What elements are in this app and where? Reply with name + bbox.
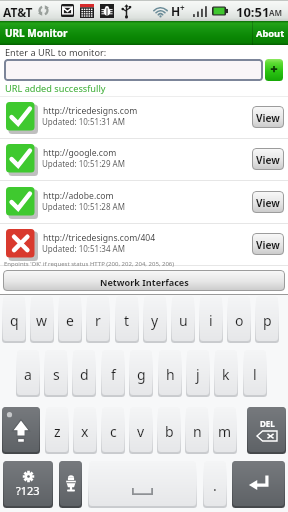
staticText: View <box>256 238 280 252</box>
button[interactable]: r <box>87 296 109 341</box>
staticText: View <box>256 111 280 125</box>
button[interactable]: View <box>252 106 284 128</box>
staticText: 10:51 <box>236 3 270 21</box>
staticText: View <box>256 153 280 167</box>
button[interactable]: Enter <box>233 461 284 506</box>
button[interactable]: y <box>144 296 166 341</box>
button[interactable]: p <box>256 296 278 341</box>
staticText: Enpoints 'OK' if request status HTTP (20… <box>4 260 175 268</box>
button[interactable]: Add URL <box>265 59 283 81</box>
button[interactable] <box>0 138 288 181</box>
staticText: m <box>218 422 232 441</box>
staticText: H <box>171 3 181 19</box>
staticText: http://tricedesigns.com/404 <box>43 232 156 244</box>
staticText: x <box>81 422 89 441</box>
button[interactable]: l <box>244 350 266 395</box>
staticText: http://tricedesigns.com <box>43 105 138 117</box>
button[interactable]: f <box>102 350 124 395</box>
button[interactable]: m <box>214 407 236 452</box>
staticText: g <box>137 365 146 384</box>
staticText: u <box>179 311 188 330</box>
button[interactable]: w <box>31 296 53 341</box>
button[interactable]: Shift <box>3 407 39 452</box>
button[interactable]: n <box>186 407 208 452</box>
button[interactable]: Delete <box>248 407 285 452</box>
staticText: q <box>10 311 19 330</box>
staticText: . <box>213 476 217 495</box>
staticText: Enter a URL to monitor: <box>5 46 107 59</box>
staticText: ?123 <box>16 483 40 498</box>
button[interactable]: Network Interfaces <box>3 270 285 291</box>
staticText: i <box>209 311 213 330</box>
button[interactable] <box>0 223 288 266</box>
button[interactable]: View <box>252 148 284 170</box>
staticText: h <box>166 365 175 384</box>
button[interactable]: s <box>45 350 67 395</box>
staticText: AM <box>269 7 283 18</box>
button[interactable]: View <box>252 191 284 213</box>
staticText: View <box>256 196 280 210</box>
staticText: y <box>151 311 159 330</box>
staticText: Network Interfaces <box>100 276 189 288</box>
staticText: URL Monitor <box>5 26 68 40</box>
button[interactable]: View <box>252 233 284 255</box>
button[interactable]: a <box>17 350 39 395</box>
staticText: Updated: 10:51:34 AM <box>42 243 125 254</box>
staticText: j <box>196 365 200 384</box>
button[interactable]: b <box>158 407 180 452</box>
staticText: URL added successfully <box>5 82 106 95</box>
button[interactable]: c <box>102 407 124 452</box>
staticText: Updated: 10:51:28 AM <box>42 201 125 212</box>
staticText: o <box>235 311 244 330</box>
staticText: p <box>263 311 272 330</box>
staticText: + <box>180 2 185 13</box>
staticText: c <box>110 422 117 441</box>
button[interactable] <box>0 96 288 139</box>
staticText: s <box>53 365 60 384</box>
staticText: d <box>80 365 89 384</box>
button[interactable]: u <box>172 296 194 341</box>
staticText: a <box>24 365 32 384</box>
staticText: f <box>111 365 116 384</box>
staticText: About <box>256 27 285 40</box>
button[interactable]: o <box>228 296 250 341</box>
staticText: k <box>222 365 230 384</box>
button[interactable]: z <box>46 407 68 452</box>
button[interactable] <box>0 181 288 224</box>
button[interactable]: e <box>59 296 81 341</box>
button[interactable]: q <box>3 296 25 341</box>
button[interactable]: Voice input <box>60 461 81 506</box>
staticText: http://google.com <box>43 147 117 159</box>
staticText: b <box>165 422 174 441</box>
button[interactable]: j <box>187 350 209 395</box>
staticText: l <box>253 365 257 384</box>
staticText: e <box>66 311 74 330</box>
button[interactable]: About <box>252 21 288 45</box>
button[interactable] <box>4 59 263 81</box>
button[interactable]: . <box>204 461 226 506</box>
staticText: w <box>36 311 48 330</box>
button[interactable]: Symbols <box>4 461 52 506</box>
button[interactable]: v <box>130 407 152 452</box>
button[interactable]: t <box>116 296 138 341</box>
button[interactable]: Space <box>89 461 196 506</box>
staticText: n <box>193 422 202 441</box>
staticText: r <box>95 311 101 330</box>
button[interactable]: x <box>74 407 96 452</box>
staticText: t <box>124 311 130 330</box>
button[interactable]: h <box>159 350 181 395</box>
staticText: Updated: 10:51:29 AM <box>42 158 125 169</box>
staticText: DEL <box>260 418 275 429</box>
staticText: v <box>137 422 145 441</box>
button[interactable]: i <box>200 296 222 341</box>
staticText: Updated: 10:51:31 AM <box>42 116 125 127</box>
button[interactable]: d <box>73 350 95 395</box>
button[interactable]: k <box>215 350 237 395</box>
button[interactable]: g <box>130 350 152 395</box>
staticText: AT&T <box>3 4 33 20</box>
staticText: http://adobe.com <box>43 190 114 202</box>
staticText: z <box>54 422 61 441</box>
